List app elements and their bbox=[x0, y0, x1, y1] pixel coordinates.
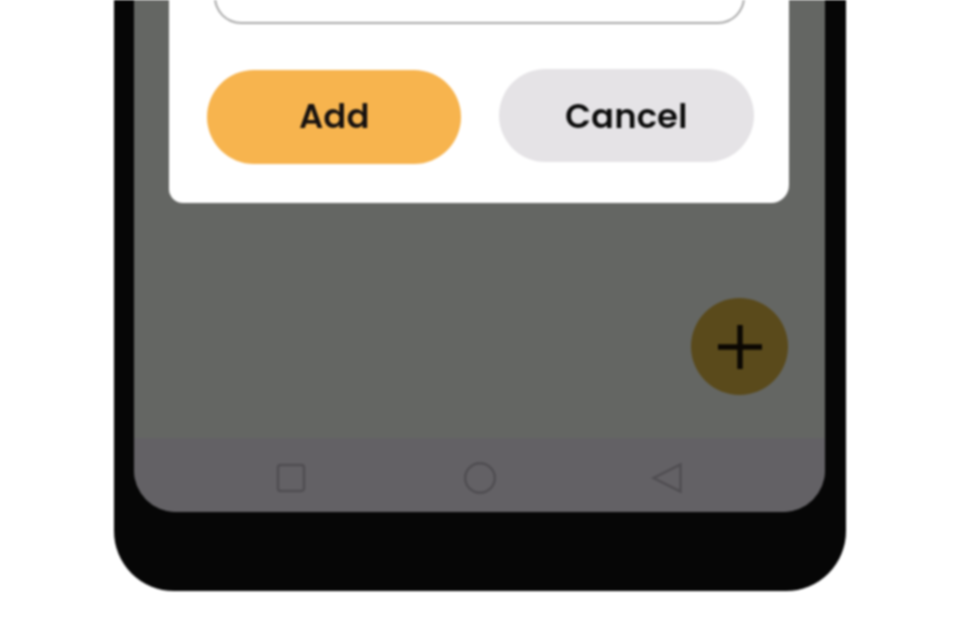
button[interactable]: Home bbox=[454, 452, 506, 504]
button[interactable]: Add bbox=[207, 70, 461, 164]
button[interactable]: Add bbox=[691, 298, 788, 395]
button[interactable]: Cancel bbox=[499, 69, 754, 162]
button[interactable]: Recents bbox=[265, 452, 317, 504]
staticText: Add bbox=[299, 92, 370, 140]
button[interactable]: Item name text field bbox=[214, 0, 745, 24]
button[interactable]: Back bbox=[641, 452, 693, 504]
staticText: Cancel bbox=[565, 92, 688, 140]
